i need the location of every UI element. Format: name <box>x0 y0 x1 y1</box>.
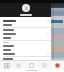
button[interactable] <box>0 19 51 23</box>
button[interactable]: Saved <box>38 61 51 69</box>
button[interactable] <box>0 69 51 72</box>
button[interactable] <box>0 57 51 61</box>
button[interactable] <box>0 28 51 32</box>
button[interactable] <box>0 0 51 17</box>
button[interactable]: Home <box>0 61 12 69</box>
button[interactable] <box>0 48 51 52</box>
button[interactable] <box>0 23 51 27</box>
button[interactable]: Profile <box>51 61 64 69</box>
button[interactable] <box>0 52 51 56</box>
button[interactable]: Feed <box>12 61 25 69</box>
button[interactable] <box>0 32 51 36</box>
button[interactable] <box>0 61 51 65</box>
button[interactable] <box>0 36 51 40</box>
button[interactable]: Explore <box>25 61 38 69</box>
button[interactable] <box>0 44 51 48</box>
